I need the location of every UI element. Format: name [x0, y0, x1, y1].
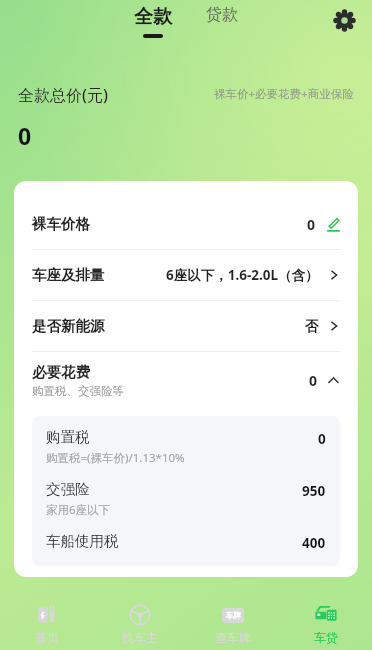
staticText: 首页 [35, 630, 59, 645]
staticText: 贷款 [206, 5, 238, 25]
staticText: 6座以下，1.6-2.0L（含） [166, 266, 319, 284]
staticText: 必要花费 [32, 363, 90, 381]
staticText: 车座及排量 [32, 266, 105, 284]
staticText: 家用6座以下 [46, 502, 111, 518]
staticText: 车牌 [226, 611, 241, 620]
button[interactable]: 必要花费 [32, 352, 340, 408]
staticText: 交强险 [46, 480, 90, 498]
button[interactable]: 交强险 [46, 480, 326, 518]
button[interactable]: 裸车价格 [32, 199, 340, 249]
staticText: 是否新能源 [32, 317, 105, 335]
staticText: 车贷 [314, 630, 338, 645]
staticText: 0 [18, 120, 32, 151]
staticText: 查车牌 [215, 630, 251, 645]
staticText: 找车主 [122, 630, 158, 645]
staticText: 全款 [134, 5, 172, 29]
staticText: 裸车价+必要花费+商业保险 [214, 86, 354, 102]
button[interactable]: 车牌 [186, 598, 279, 650]
staticText: 0 [318, 430, 326, 448]
staticText: 否 [305, 318, 319, 335]
button[interactable]: 首页 [0, 598, 93, 650]
staticText: 全款总价(元) [18, 84, 108, 106]
button[interactable]: 车船使用税 [46, 532, 326, 552]
staticText: 购置税=(裸车价)/1.13*10% [46, 450, 185, 466]
button[interactable]: Settings [330, 6, 358, 34]
button[interactable]: 是否新能源 [32, 301, 340, 351]
button[interactable]: 贷款 [200, 5, 244, 25]
staticText: 0 [307, 215, 316, 234]
staticText: 购置税、交强险等 [32, 384, 124, 398]
button[interactable]: 找车主 [93, 598, 186, 650]
staticText: 950 [302, 482, 326, 500]
button[interactable]: 车座及排量 [32, 250, 340, 300]
staticText: 购置税 [46, 428, 90, 446]
staticText: 0 [309, 371, 318, 390]
staticText: 裸车价格 [32, 215, 90, 233]
button[interactable]: 车贷 [279, 598, 372, 650]
button[interactable]: 购置税 [46, 428, 326, 466]
staticText: 车船使用税 [46, 532, 119, 550]
staticText: 400 [302, 534, 326, 552]
button[interactable]: 全款 [128, 5, 178, 38]
